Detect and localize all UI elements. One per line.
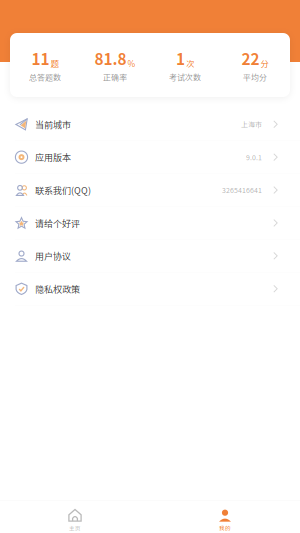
staticText: 11 — [31, 47, 49, 69]
button[interactable]: 当前城市 — [0, 108, 300, 141]
staticText: 平均分 — [243, 71, 267, 83]
button[interactable]: 我的 — [150, 500, 300, 533]
staticText: 81.8 — [94, 47, 126, 69]
staticText: 联系我们(QQ) — [35, 183, 91, 197]
staticText: 次 — [186, 57, 194, 69]
button[interactable]: 请给个好评 — [0, 207, 300, 240]
staticText: 隐私权政策 — [35, 282, 80, 295]
staticText: 我的 — [219, 524, 231, 532]
staticText: 用户协议 — [35, 249, 71, 262]
staticText: 总答题数 — [29, 71, 61, 83]
staticText: 上海市 — [241, 119, 262, 129]
staticText: 22 — [241, 47, 259, 69]
button[interactable]: 用户协议 — [0, 240, 300, 272]
staticText: 分 — [260, 57, 268, 69]
staticText: 1 — [176, 47, 185, 69]
button[interactable]: 主页 — [0, 500, 150, 533]
button[interactable]: 隐私权政策 — [0, 272, 300, 305]
staticText: 9.0.1 — [246, 152, 262, 162]
staticText: 当前城市 — [35, 118, 71, 131]
staticText: 主页 — [69, 524, 81, 532]
staticText: 正确率 — [103, 71, 127, 83]
staticText: % — [127, 57, 135, 69]
staticText: 3265416641 — [222, 185, 262, 195]
button[interactable]: 联系我们(QQ) — [0, 174, 300, 207]
button[interactable]: 应用版本 — [0, 141, 300, 174]
staticText: 题 — [50, 57, 58, 69]
staticText: 考试次数 — [169, 71, 201, 83]
staticText: 请给个好评 — [35, 216, 80, 229]
staticText: 应用版本 — [35, 151, 71, 164]
